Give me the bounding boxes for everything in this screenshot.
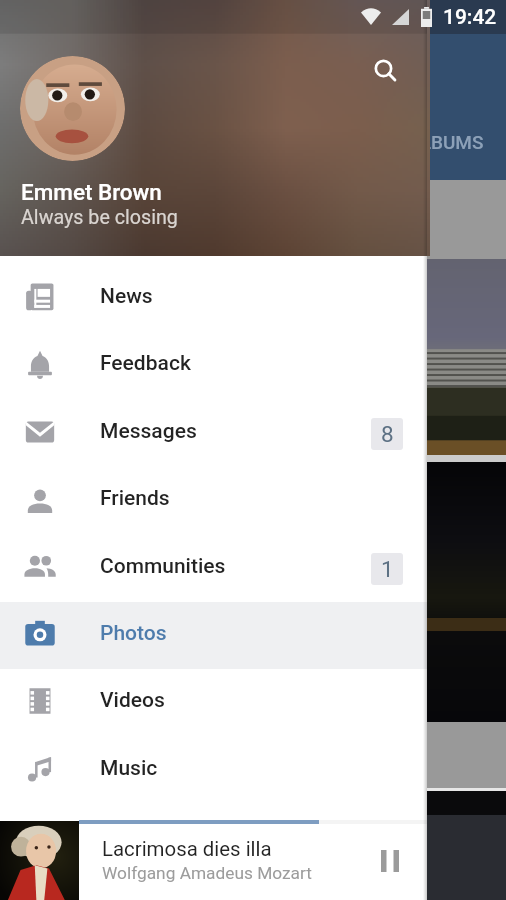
button[interactable]: Music bbox=[0, 737, 427, 804]
button[interactable]: Lacrimosa dies illa bbox=[0, 821, 427, 900]
button[interactable]: Videos bbox=[0, 669, 427, 736]
staticText: News bbox=[100, 284, 153, 309]
staticText: Music bbox=[100, 756, 158, 781]
button[interactable]: Photos bbox=[0, 602, 427, 669]
button[interactable]: Friends bbox=[0, 467, 427, 534]
staticText: Always be closing bbox=[21, 206, 178, 229]
staticText: Wolfgang Amadeus Mozart bbox=[102, 863, 312, 883]
button[interactable]: Messages bbox=[0, 400, 427, 467]
staticText: Videos bbox=[100, 688, 165, 713]
staticText: Feedback bbox=[100, 351, 191, 376]
staticText: Photos bbox=[100, 621, 167, 646]
button[interactable]: News bbox=[0, 265, 427, 332]
button[interactable]: Pause bbox=[366, 837, 414, 885]
staticText: Messages bbox=[100, 419, 197, 444]
staticText: Emmet Brown bbox=[21, 179, 162, 205]
staticText: 19:42 bbox=[443, 5, 497, 30]
staticText: Lacrimosa dies illa bbox=[102, 837, 272, 861]
button[interactable]: Search bbox=[362, 47, 409, 94]
staticText: 1 bbox=[381, 556, 394, 582]
staticText: ALBUMS bbox=[408, 131, 484, 153]
button[interactable]: Communities bbox=[0, 535, 427, 602]
button[interactable]: Profile picture bbox=[20, 56, 125, 161]
staticText: Friends bbox=[100, 486, 170, 511]
button[interactable]: Feedback bbox=[0, 332, 427, 399]
staticText: 8 bbox=[381, 421, 394, 447]
staticText: Communities bbox=[100, 554, 226, 579]
